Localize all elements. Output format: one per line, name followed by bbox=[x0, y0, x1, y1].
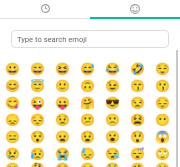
staticText: 😱 bbox=[155, 130, 170, 144]
button[interactable]: 😉 bbox=[100, 77, 125, 94]
staticText: 🤔 bbox=[30, 162, 45, 167]
staticText: 😭 bbox=[55, 147, 70, 161]
staticText: 😛 bbox=[55, 96, 70, 110]
button[interactable]: 😬 bbox=[0, 162, 25, 167]
staticText: 😗 bbox=[155, 79, 170, 93]
button[interactable]: 😒 bbox=[125, 94, 150, 111]
button[interactable]: Smileys and people bbox=[90, 0, 180, 17]
button[interactable]: 😑 bbox=[0, 128, 25, 145]
staticText: 😄 bbox=[30, 62, 45, 76]
button[interactable]: 😪 bbox=[100, 145, 125, 162]
button[interactable]: Type to search emoji bbox=[11, 30, 169, 48]
staticText: 😬 bbox=[5, 162, 20, 167]
button[interactable]: 😯 bbox=[25, 128, 50, 145]
staticText: 😔 bbox=[155, 96, 170, 110]
button[interactable]: 🙁 bbox=[100, 111, 125, 128]
button[interactable]: 😢 bbox=[0, 145, 25, 162]
staticText: 🙂 bbox=[55, 79, 70, 93]
staticText: 😔 bbox=[30, 113, 45, 127]
button[interactable]: 😆 bbox=[50, 60, 75, 77]
staticText: 🤗 bbox=[80, 96, 95, 110]
staticText: 😅 bbox=[80, 62, 95, 76]
staticText: 😮 bbox=[105, 130, 120, 144]
staticText: 😥 bbox=[30, 147, 45, 161]
button[interactable]: 🤑 bbox=[100, 162, 125, 167]
button[interactable]: 😋 bbox=[0, 94, 25, 111]
button[interactable]: 😊 bbox=[0, 77, 25, 94]
staticText: 🤣 bbox=[130, 62, 145, 76]
button[interactable]: 😅 bbox=[75, 60, 100, 77]
button[interactable]: 😇 bbox=[25, 77, 50, 94]
button[interactable]: 😮 bbox=[100, 128, 125, 145]
staticText: Type to search emoji bbox=[17, 35, 87, 44]
button[interactable]: 😀 bbox=[0, 60, 25, 77]
staticText: 😒 bbox=[130, 96, 145, 110]
staticText: 🙄 bbox=[155, 147, 170, 161]
button[interactable]: 😄 bbox=[25, 60, 50, 77]
staticText: 😂 bbox=[105, 62, 120, 76]
staticText: 🤐 bbox=[155, 162, 170, 167]
staticText: 😓 bbox=[80, 147, 95, 161]
button[interactable]: 🤧 bbox=[75, 162, 100, 167]
button[interactable]: 😱 bbox=[150, 128, 175, 145]
staticText: 😶 bbox=[155, 113, 170, 127]
button[interactable]: 😭 bbox=[50, 145, 75, 162]
button[interactable]: Recent emoji bbox=[0, 0, 90, 17]
staticText: 😕 bbox=[80, 113, 95, 127]
staticText: 😧 bbox=[80, 130, 95, 144]
staticText: 😌 bbox=[155, 62, 170, 76]
staticText: 😆 bbox=[55, 62, 70, 76]
staticText: 😞 bbox=[5, 113, 20, 127]
button[interactable]: 😌 bbox=[150, 60, 175, 77]
staticText: 😋 bbox=[5, 96, 20, 110]
button[interactable]: 🤒 bbox=[50, 162, 75, 167]
button[interactable]: 😲 bbox=[125, 128, 150, 145]
staticText: 🤗 bbox=[130, 162, 145, 167]
staticText: 😢 bbox=[5, 147, 20, 161]
button[interactable]: 😦 bbox=[50, 128, 75, 145]
button[interactable]: 😟 bbox=[50, 111, 75, 128]
button[interactable]: 🤗 bbox=[125, 162, 150, 167]
button[interactable]: 😔 bbox=[25, 111, 50, 128]
staticText: 😊 bbox=[5, 79, 20, 93]
button[interactable]: 🙄 bbox=[150, 145, 175, 162]
staticText: 🤒 bbox=[55, 162, 70, 167]
staticText: 😟 bbox=[55, 113, 70, 127]
staticText: 😫 bbox=[130, 113, 145, 127]
staticText: 😴 bbox=[130, 147, 145, 161]
button[interactable]: 😧 bbox=[75, 128, 100, 145]
button[interactable]: 😶 bbox=[150, 111, 175, 128]
button[interactable]: 😕 bbox=[75, 111, 100, 128]
button[interactable]: 😗 bbox=[150, 77, 175, 94]
button[interactable]: 😫 bbox=[125, 111, 150, 128]
staticText: 😇 bbox=[30, 79, 45, 93]
button[interactable]: 😴 bbox=[125, 145, 150, 162]
staticText: 🙃 bbox=[80, 79, 95, 93]
button[interactable]: 😙 bbox=[125, 77, 150, 94]
button[interactable]: 😎 bbox=[100, 94, 125, 111]
button[interactable]: 😓 bbox=[75, 145, 100, 162]
button[interactable]: 😜 bbox=[25, 94, 50, 111]
button[interactable]: 🤣 bbox=[125, 60, 150, 77]
button[interactable]: 😥 bbox=[25, 145, 50, 162]
button[interactable]: 🤐 bbox=[150, 162, 175, 167]
button[interactable]: 😞 bbox=[0, 111, 25, 128]
staticText: 😪 bbox=[105, 147, 120, 161]
button[interactable]: 🤗 bbox=[75, 94, 100, 111]
staticText: 😯 bbox=[30, 130, 45, 144]
button[interactable]: 🙃 bbox=[75, 77, 100, 94]
button[interactable]: 😔 bbox=[150, 94, 175, 111]
staticText: 😑 bbox=[5, 130, 20, 144]
button[interactable]: 😂 bbox=[100, 60, 125, 77]
staticText: 😎 bbox=[105, 96, 120, 110]
staticText: 😀 bbox=[5, 62, 20, 76]
button[interactable]: 🤔 bbox=[25, 162, 50, 167]
staticText: 🙁 bbox=[105, 113, 120, 127]
button[interactable]: 🙂 bbox=[50, 77, 75, 94]
staticText: 😜 bbox=[30, 96, 45, 110]
staticText: 🤑 bbox=[105, 162, 120, 167]
staticText: 😲 bbox=[130, 130, 145, 144]
button[interactable]: 😛 bbox=[50, 94, 75, 111]
staticText: 😉 bbox=[105, 79, 120, 93]
staticText: 🤧 bbox=[80, 162, 95, 167]
